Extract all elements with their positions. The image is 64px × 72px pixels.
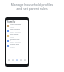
staticText: and set parent rules <box>0 6 64 10</box>
staticText: Adult <box>10 26 15 28</box>
staticText: Manage household profiles <box>0 2 64 6</box>
staticText: Teen - limited <box>10 31 21 33</box>
staticText: Teen - limited <box>10 41 21 43</box>
staticText: Child <box>10 36 15 38</box>
staticText: Family <box>7 20 16 23</box>
staticText: Jordan Lee <box>10 38 20 41</box>
button[interactable]: Alex Morgan <box>6 23 28 28</box>
button[interactable]: People <box>11 58 15 61</box>
button[interactable]: Devices <box>15 58 19 61</box>
staticText: Sam Rivera <box>10 28 20 31</box>
staticText: Alex Morgan <box>10 23 22 26</box>
button[interactable]: More <box>23 58 27 61</box>
button[interactable]: Jordan Lee <box>6 38 28 43</box>
button[interactable]: Casey Kim <box>6 43 28 48</box>
staticText: Kim Patel <box>10 33 19 36</box>
button[interactable]: Settings <box>19 58 23 61</box>
button[interactable]: Family <box>7 20 28 23</box>
button[interactable]: Sam Rivera <box>6 28 28 33</box>
staticText: Guest <box>10 46 15 48</box>
button[interactable]: Home <box>7 58 11 61</box>
button[interactable]: Kim Patel <box>6 33 28 38</box>
staticText: Casey Kim <box>10 43 20 46</box>
